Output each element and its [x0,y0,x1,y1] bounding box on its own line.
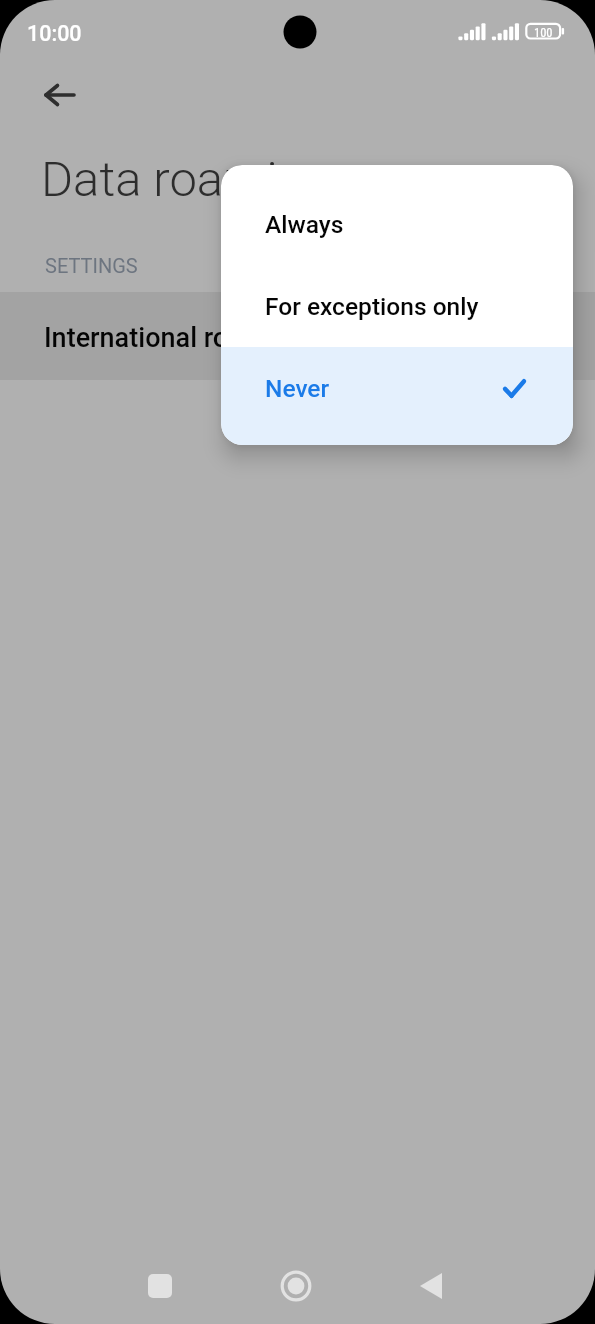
button[interactable]: Navigate up [36,71,84,119]
staticText: 100 [534,25,553,40]
button[interactable]: Home [272,1262,320,1310]
staticText: Never [265,374,330,403]
button[interactable]: For exceptions only [221,265,573,347]
staticText: For exceptions only [265,292,479,321]
staticText: SETTINGS [45,254,138,277]
button[interactable]: Back [407,1262,455,1310]
staticText: Data roaming [41,151,332,208]
button[interactable]: Always [221,183,573,265]
staticText: Always [265,210,344,239]
button[interactable]: International roaming [0,292,595,380]
staticText: 10:00 [27,21,82,46]
button[interactable]: Recent apps [136,1262,184,1310]
staticText: International roaming [44,322,304,354]
button[interactable]: Never [221,347,573,429]
